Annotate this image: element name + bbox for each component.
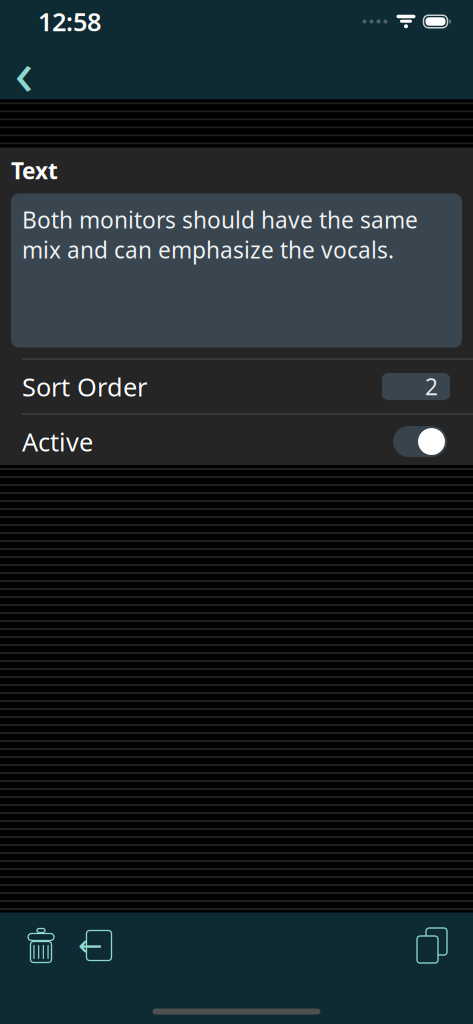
staticText: 12:58 bbox=[38, 5, 101, 38]
staticText: ‹ bbox=[14, 31, 33, 112]
button[interactable]: Revert bbox=[68, 920, 122, 970]
button[interactable]: Active bbox=[0, 415, 473, 469]
staticText: ← bbox=[78, 929, 103, 962]
button[interactable]: Delete bbox=[14, 920, 68, 970]
button[interactable]: Sort Order bbox=[0, 360, 473, 414]
staticText: 2 bbox=[425, 371, 438, 402]
button[interactable]: Duplicate bbox=[405, 920, 459, 970]
staticText: Sort Order bbox=[22, 370, 147, 403]
staticText: Active bbox=[22, 425, 93, 458]
staticText: Text bbox=[11, 155, 58, 185]
staticText: Both monitors should have the same mix a… bbox=[22, 205, 418, 265]
button[interactable]: Back bbox=[2, 49, 46, 93]
